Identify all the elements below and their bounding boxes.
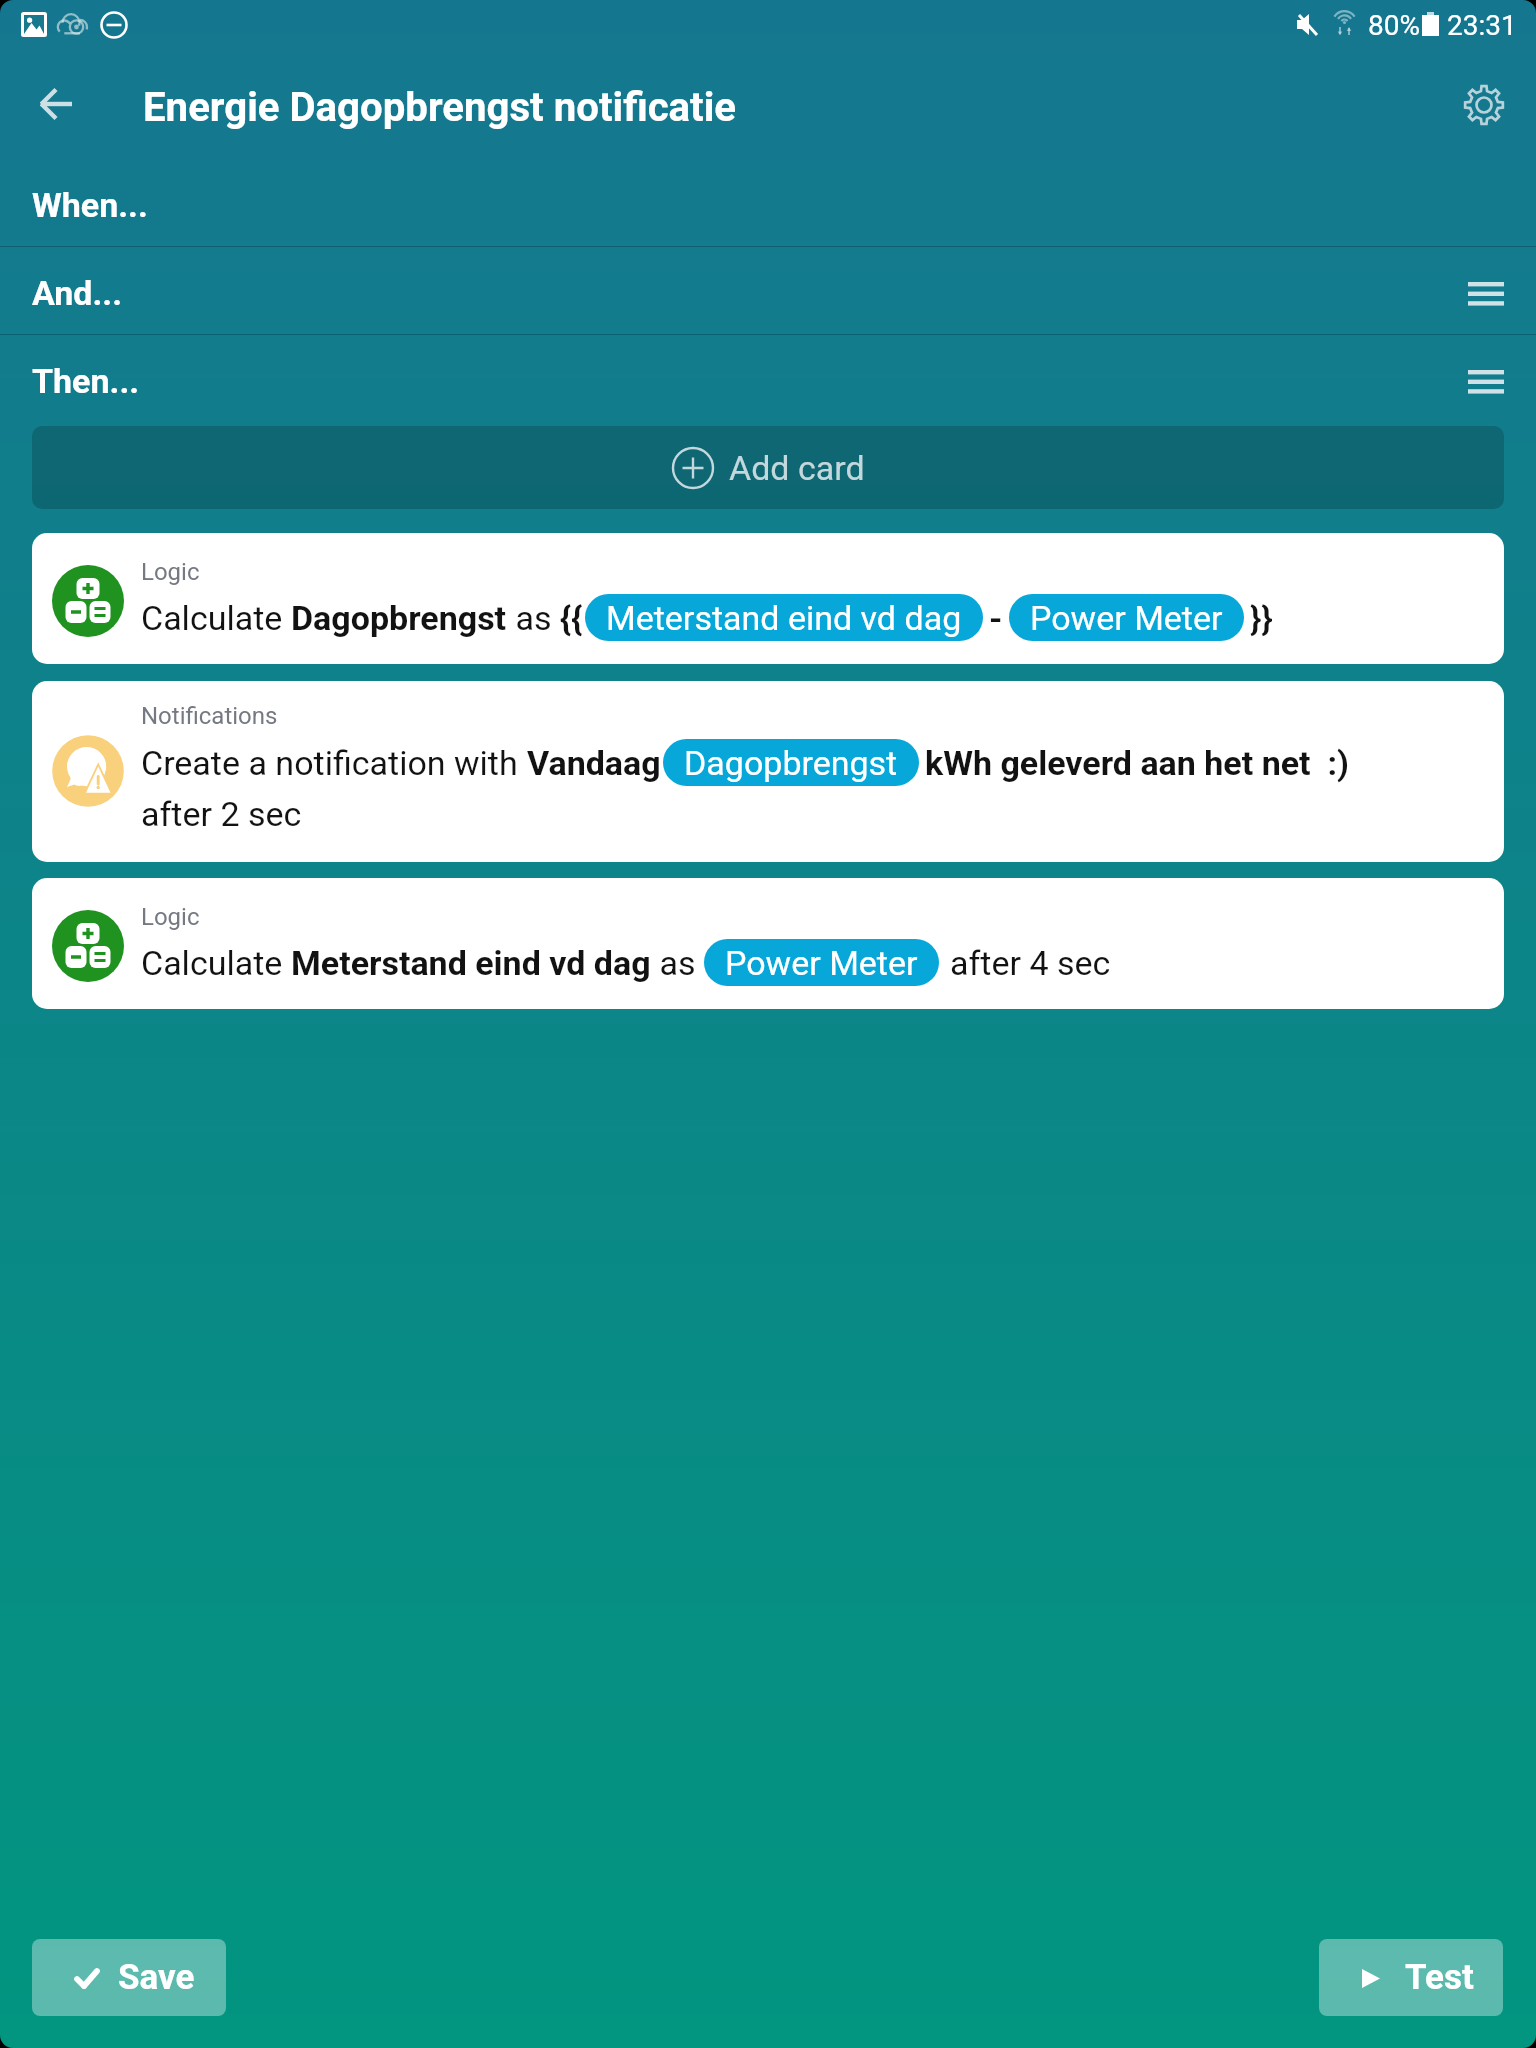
- staticText: -: [989, 598, 1003, 638]
- staticText: kWh geleverd aan het net :): [925, 743, 1350, 783]
- button[interactable]: Add card: [32, 426, 1504, 509]
- button[interactable]: And...: [0, 247, 1536, 334]
- staticText: Meterstand eind vd dag: [291, 943, 651, 983]
- staticText: Energie Dagopbrengst notificatie: [143, 84, 737, 131]
- staticText: 80%: [1368, 9, 1420, 42]
- staticText: Create a notification with: [141, 743, 527, 783]
- staticText: 23:31: [1447, 9, 1517, 42]
- button[interactable]: Settings: [1450, 71, 1518, 139]
- button[interactable]: Reorder: [1454, 261, 1518, 325]
- staticText: after 4 sec: [950, 943, 1111, 983]
- staticText: as: [507, 598, 560, 638]
- staticText: Notifications: [141, 702, 278, 730]
- staticText: And...: [32, 273, 123, 313]
- button[interactable]: Logic: [32, 533, 1504, 664]
- button[interactable]: Test: [1319, 1939, 1503, 2016]
- staticText: Power Meter: [1030, 598, 1223, 638]
- staticText: Add card: [729, 448, 865, 488]
- staticText: after 2 sec: [141, 794, 302, 834]
- staticText: When...: [32, 185, 148, 225]
- staticText: }}: [1250, 598, 1273, 638]
- staticText: Meterstand eind vd dag: [606, 598, 962, 638]
- button[interactable]: Reorder: [1454, 349, 1518, 413]
- staticText: Vandaag: [527, 743, 661, 783]
- staticText: {{: [560, 598, 583, 638]
- button[interactable]: Logic: [32, 878, 1504, 1009]
- button[interactable]: Notifications: [32, 681, 1504, 862]
- button[interactable]: Back: [22, 70, 90, 138]
- staticText: Logic: [141, 903, 200, 931]
- staticText: Save: [118, 1957, 195, 1998]
- button[interactable]: Then...: [0, 335, 1536, 422]
- staticText: Power Meter: [725, 943, 918, 983]
- staticText: Dagopbrengst: [291, 598, 507, 638]
- staticText: Calculate: [141, 943, 291, 983]
- button[interactable]: When...: [0, 159, 1536, 246]
- staticText: Test: [1405, 1957, 1474, 1998]
- staticText: as: [651, 943, 704, 983]
- staticText: Dagopbrengst: [684, 743, 898, 783]
- staticText: Logic: [141, 558, 200, 586]
- button[interactable]: Save: [32, 1939, 226, 2016]
- staticText: Then...: [32, 361, 140, 401]
- staticText: Calculate: [141, 598, 291, 638]
